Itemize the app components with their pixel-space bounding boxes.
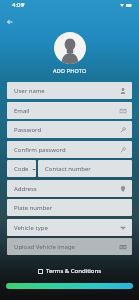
staticText: Confirm password xyxy=(14,146,66,154)
staticText: Plate number xyxy=(14,204,53,212)
staticText: Address xyxy=(14,185,37,193)
button[interactable]: Back xyxy=(2,14,18,30)
button[interactable]: Email xyxy=(7,102,132,119)
button[interactable]: Sign up xyxy=(6,283,133,289)
staticText: Upload Vehicle image xyxy=(14,243,75,251)
staticText: Email xyxy=(14,107,30,115)
button[interactable]: Password xyxy=(7,121,132,138)
button[interactable]: Confirm password xyxy=(7,141,132,158)
button[interactable]: Vehicle type xyxy=(7,219,132,236)
button[interactable]: Contact number xyxy=(38,160,132,177)
button[interactable]: Add photo xyxy=(54,32,86,64)
staticText: Vehicle type xyxy=(14,224,48,232)
staticText: Contact number xyxy=(45,165,91,173)
button[interactable]: Address xyxy=(7,180,132,197)
staticText: ADD PHOTO xyxy=(53,67,87,74)
button[interactable]: Upload Vehicle image xyxy=(7,238,132,255)
button[interactable]: Plate number xyxy=(7,199,132,216)
staticText: 4:09 xyxy=(12,1,24,9)
staticText: User name xyxy=(14,87,45,95)
button[interactable]: Code xyxy=(7,160,36,177)
staticText: Password xyxy=(14,126,42,134)
staticText: Code xyxy=(14,165,29,173)
button[interactable]: Terms & Conditions xyxy=(0,265,139,277)
button[interactable]: User name xyxy=(7,82,132,99)
staticText: Terms & Conditions xyxy=(46,267,102,275)
